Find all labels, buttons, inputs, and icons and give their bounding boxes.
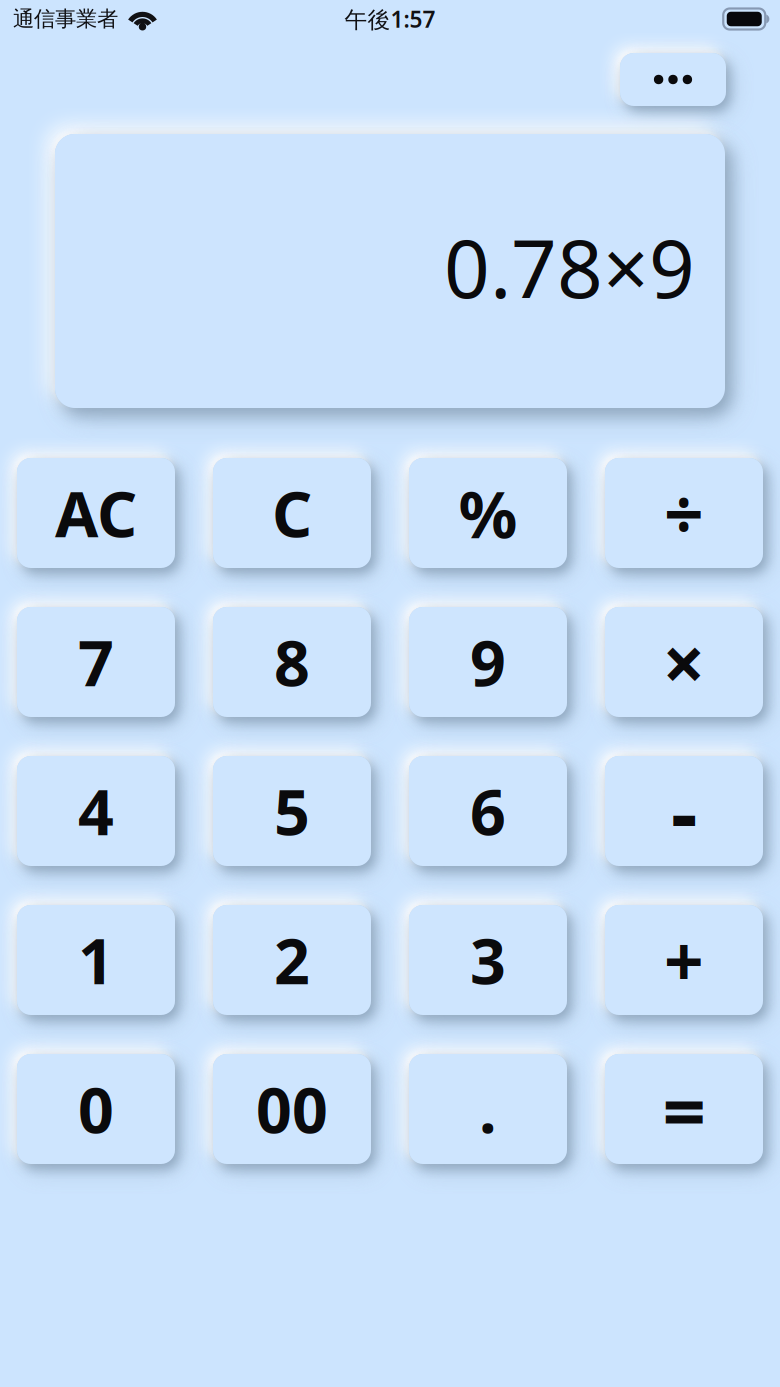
button[interactable]: 1 [17, 905, 175, 1015]
staticText: ÷ [664, 467, 704, 559]
staticText: 6 [470, 769, 506, 853]
staticText: 7 [78, 620, 114, 704]
staticText: 2 [274, 918, 310, 1002]
button[interactable]: 5 [213, 756, 371, 866]
staticText: . [479, 1067, 497, 1151]
button[interactable]: 4 [17, 756, 175, 866]
staticText: - [671, 756, 697, 866]
staticText: × [662, 612, 705, 712]
staticText: 1 [78, 918, 114, 1002]
staticText: 通信事業者 [13, 6, 118, 32]
staticText: 0.78×9 [444, 214, 695, 320]
button[interactable]: 00 [213, 1054, 371, 1164]
button[interactable]: × [605, 607, 763, 717]
button[interactable]: 8 [213, 607, 371, 717]
button[interactable]: = [605, 1054, 763, 1164]
button[interactable]: AC [17, 458, 175, 568]
staticText: 8 [274, 620, 310, 704]
staticText: 0 [78, 1067, 114, 1151]
button[interactable]: 7 [17, 607, 175, 717]
staticText: AC [55, 471, 137, 555]
staticText: 5 [274, 769, 310, 853]
staticText: = [662, 1058, 705, 1159]
staticText: % [458, 470, 517, 556]
staticText: C [272, 471, 312, 555]
button[interactable]: 0 [17, 1054, 175, 1164]
staticText: + [664, 914, 704, 1006]
button[interactable]: 9 [409, 607, 567, 717]
button[interactable]: - [605, 756, 763, 866]
button[interactable]: More options [620, 53, 726, 106]
button[interactable]: + [605, 905, 763, 1015]
staticText: 4 [78, 769, 114, 853]
staticText: 00 [256, 1067, 328, 1151]
staticText: 午後1:57 [344, 4, 435, 34]
button[interactable]: 3 [409, 905, 567, 1015]
button[interactable]: . [409, 1054, 567, 1164]
staticText: 9 [470, 620, 506, 704]
button[interactable]: 2 [213, 905, 371, 1015]
button[interactable]: 6 [409, 756, 567, 866]
button[interactable]: ÷ [605, 458, 763, 568]
button[interactable]: % [409, 458, 567, 568]
button[interactable]: C [213, 458, 371, 568]
staticText: 3 [470, 918, 506, 1002]
